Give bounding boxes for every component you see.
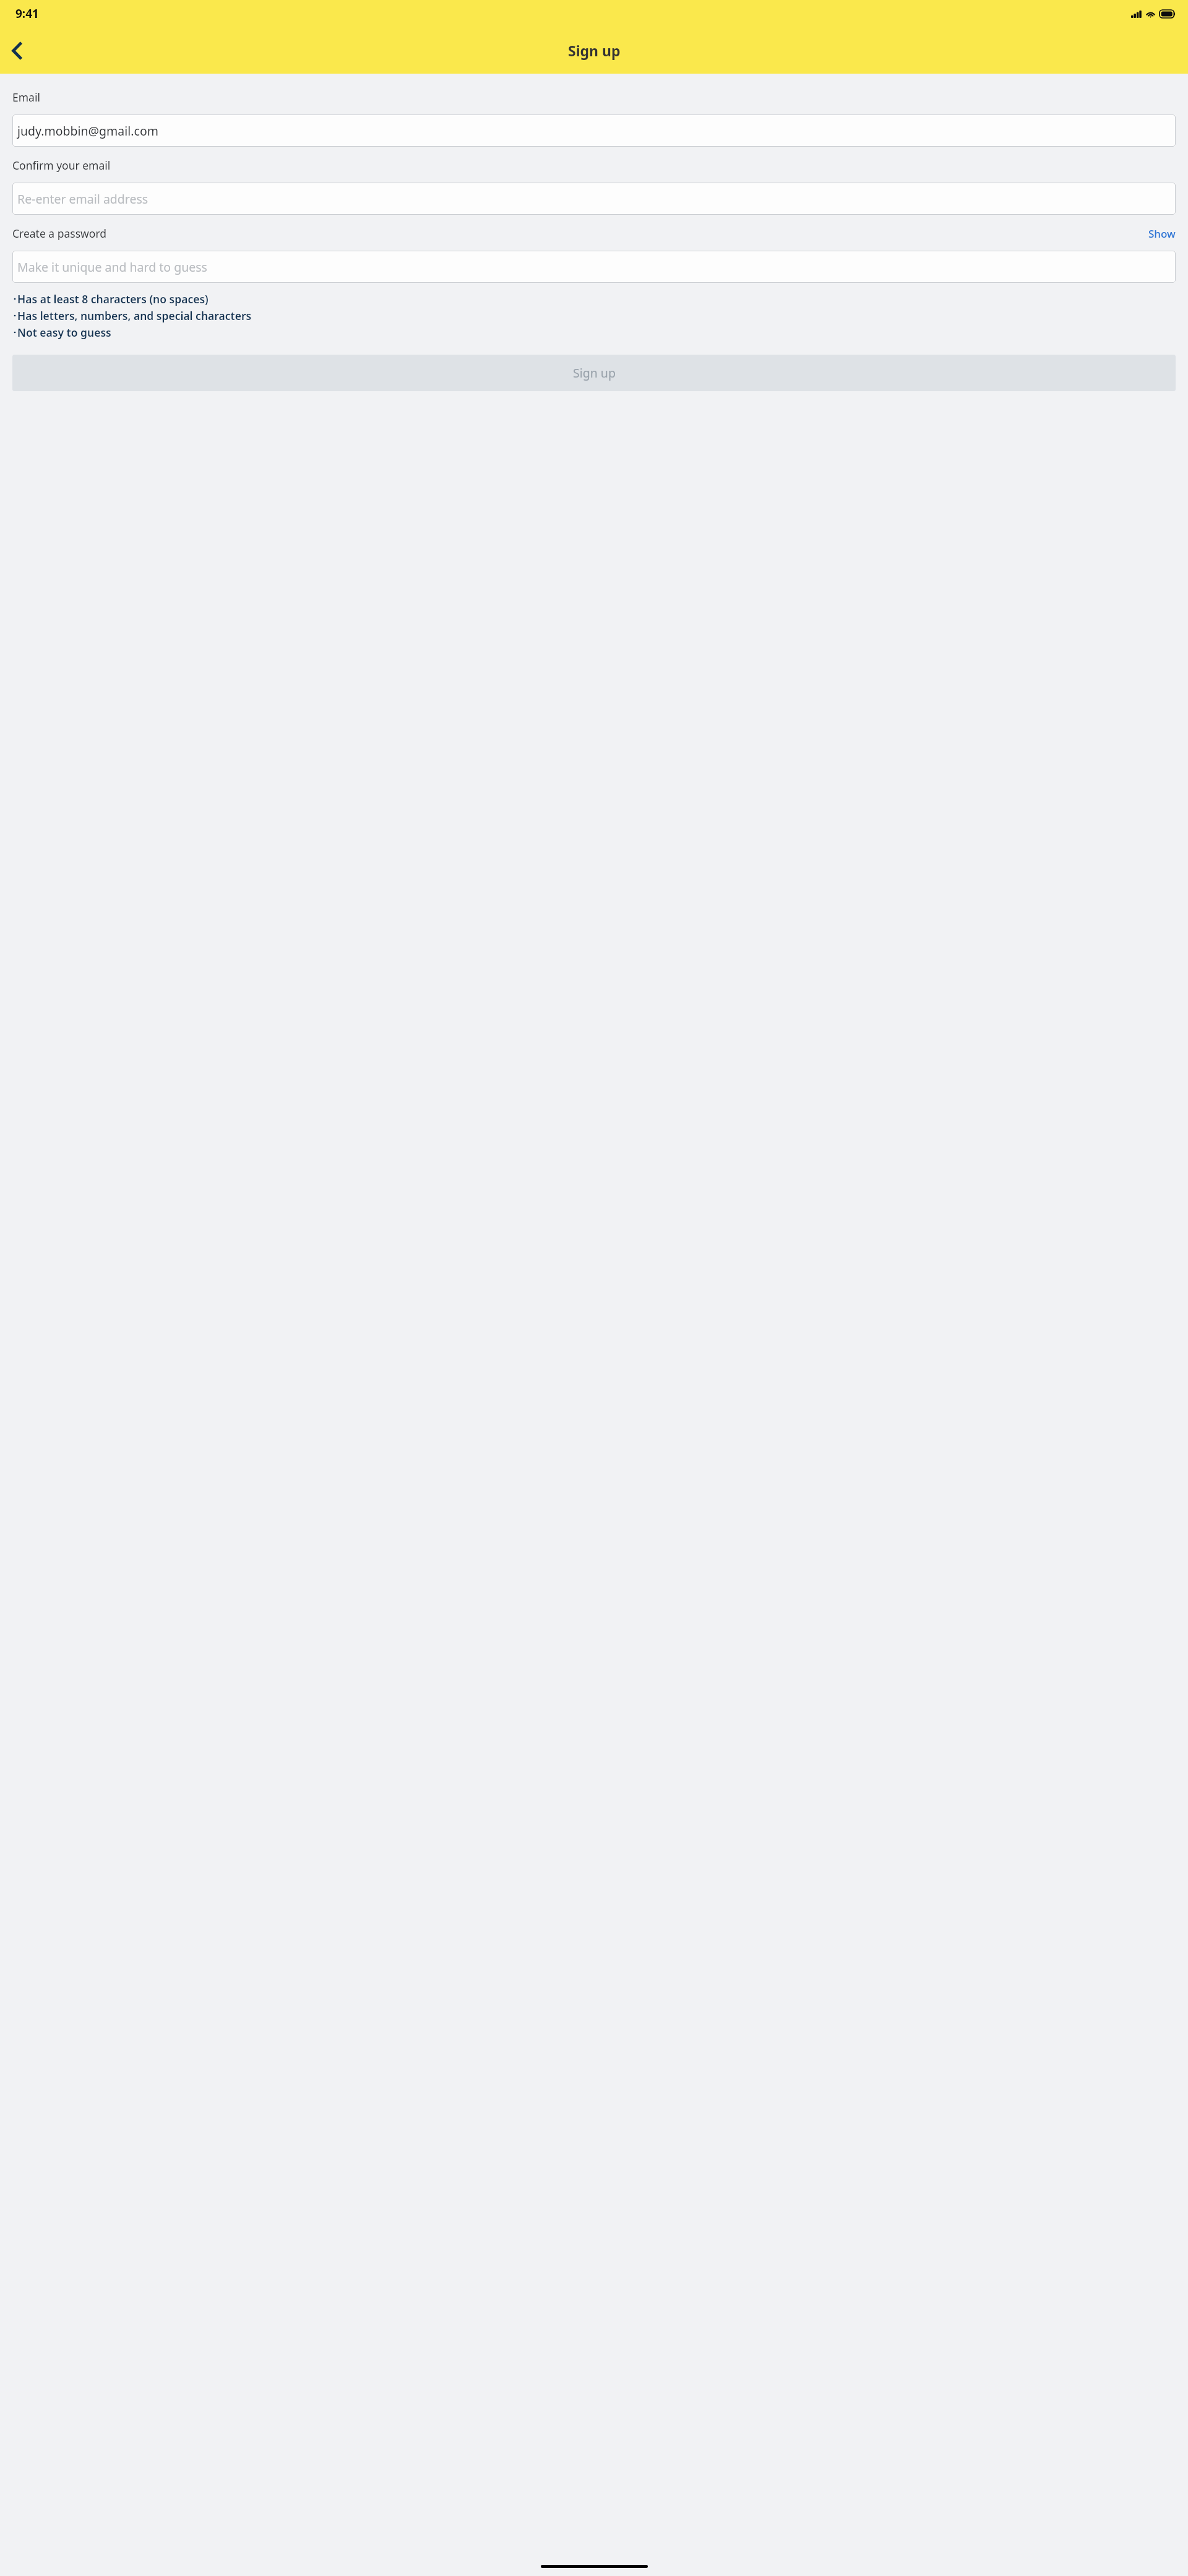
staticText: Sign up bbox=[568, 41, 621, 60]
button[interactable]: judy.mobbin@gmail.com bbox=[12, 115, 1176, 147]
button[interactable]: Show bbox=[1148, 227, 1176, 241]
staticText: Not easy to guess bbox=[17, 325, 111, 340]
staticText: Re-enter email address bbox=[17, 191, 148, 207]
staticText: judy.mobbin@gmail.com bbox=[17, 123, 158, 139]
staticText: Has at least 8 characters (no spaces) bbox=[17, 292, 209, 306]
button[interactable]: Re-enter email address bbox=[12, 183, 1176, 215]
button[interactable]: Make it unique and hard to guess bbox=[12, 251, 1176, 283]
staticText: Email bbox=[12, 90, 40, 105]
staticText: 9:41 bbox=[15, 6, 39, 22]
button[interactable]: Sign up bbox=[12, 355, 1176, 391]
button[interactable]: Back bbox=[2, 37, 31, 65]
staticText: Show bbox=[1148, 227, 1176, 241]
staticText: Create a password bbox=[12, 226, 107, 241]
staticText: Make it unique and hard to guess bbox=[17, 259, 207, 275]
staticText: Sign up bbox=[573, 365, 616, 381]
staticText: Has letters, numbers, and special charac… bbox=[17, 308, 252, 323]
staticText: Confirm your email bbox=[12, 158, 111, 173]
